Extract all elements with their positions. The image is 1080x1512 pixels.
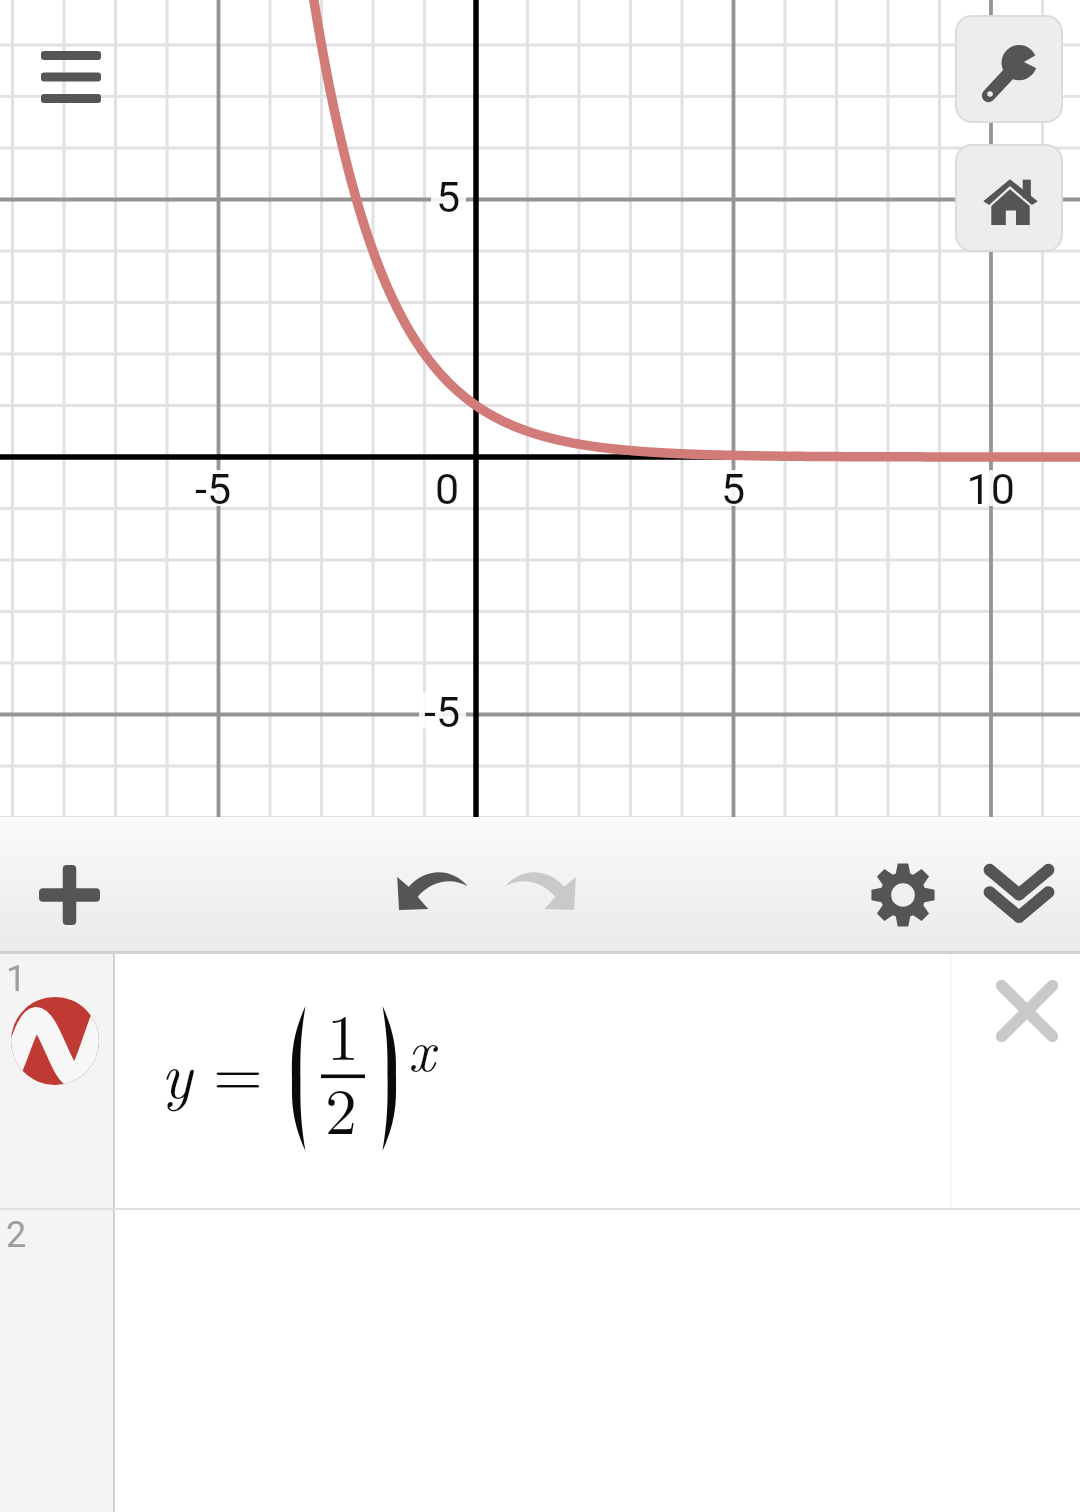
button[interactable]: Delete expression [981,965,1073,1057]
button[interactable]: 2 [0,1210,1080,1512]
button[interactable]: Home [957,146,1061,250]
button[interactable]: 1 [0,954,1080,1208]
button[interactable]: Collapse keypad [969,845,1069,945]
staticText: 2 [6,1214,27,1256]
button[interactable]: Toggle graph [11,997,99,1085]
staticText: 1 [6,958,27,1000]
button[interactable]: Redo [501,866,581,914]
button[interactable]: Undo [392,866,472,914]
button[interactable]: Menu [16,22,126,132]
button[interactable]: Tools [957,17,1061,121]
button[interactable]: Graph settings [853,845,953,945]
button[interactable]: Add expression [19,845,119,945]
